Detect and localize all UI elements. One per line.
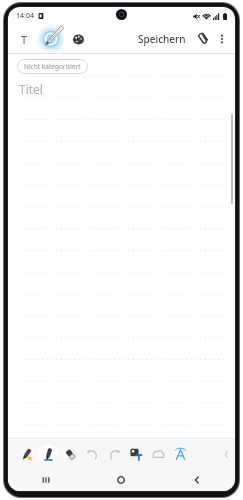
button[interactable]: Highlighter pen xyxy=(38,444,58,464)
button[interactable]: Shape xyxy=(148,444,168,464)
button[interactable]: Undo xyxy=(82,444,102,464)
button[interactable]: Home xyxy=(83,469,159,491)
button[interactable]: Pen mode xyxy=(35,25,67,53)
button[interactable]: Palette xyxy=(67,28,89,50)
button[interactable]: Text mode xyxy=(13,28,35,50)
button[interactable]: Pen favourite xyxy=(16,444,36,464)
button[interactable]: Speichern xyxy=(134,28,190,50)
button[interactable]: Text box xyxy=(126,444,146,464)
button[interactable]: Eraser xyxy=(60,444,80,464)
staticText: T xyxy=(21,32,28,47)
staticText: 14:04 xyxy=(16,11,34,21)
button[interactable]: More options xyxy=(213,30,231,48)
button[interactable]: Attach xyxy=(193,29,213,49)
button[interactable]: Recent apps xyxy=(8,469,83,491)
staticText: Nicht kategorisiert xyxy=(24,62,81,71)
staticText: Speichern xyxy=(138,32,186,46)
staticText: Titel xyxy=(19,81,43,97)
button[interactable]: Back xyxy=(159,469,235,491)
button[interactable]: Redo xyxy=(104,444,124,464)
button[interactable]: Nicht kategorisiert xyxy=(17,59,88,74)
button[interactable]: Handwriting to text xyxy=(170,444,190,464)
